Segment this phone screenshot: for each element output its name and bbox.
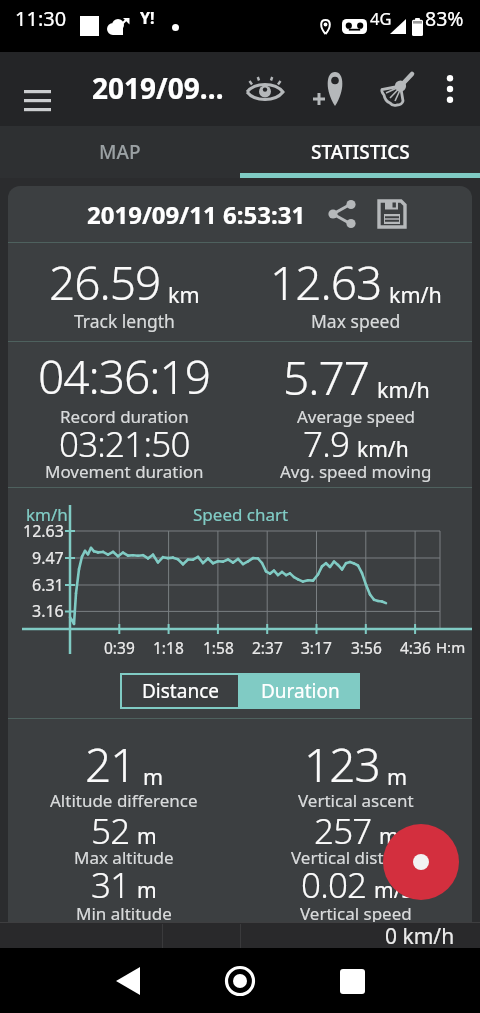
staticText: 12.63	[23, 520, 64, 542]
staticText: Vertical distance	[291, 846, 422, 869]
staticText: 0:39	[104, 637, 135, 658]
button[interactable]	[240, 64, 290, 114]
button[interactable]: MAP	[0, 126, 240, 178]
button[interactable]: STATISTICS	[240, 126, 480, 178]
button[interactable]	[370, 192, 414, 236]
staticText: m	[143, 762, 164, 791]
staticText: km	[168, 280, 200, 309]
staticText: Avg. speed moving	[280, 460, 432, 483]
staticText: 123	[304, 733, 380, 796]
staticText: Min altitude	[76, 902, 172, 922]
staticText: STATISTICS	[311, 139, 410, 165]
staticText: H:m	[436, 637, 466, 657]
staticText: 7.9	[303, 420, 350, 468]
staticText: m	[387, 762, 408, 791]
staticText: km/h	[357, 435, 409, 464]
staticText: 0 km/h	[385, 922, 455, 948]
staticText: 1:58	[203, 637, 234, 658]
staticText: 21	[85, 733, 136, 796]
staticText: Movement duration	[45, 460, 204, 483]
staticText: MAP	[99, 139, 141, 165]
staticText: Vertical speed	[300, 902, 412, 922]
staticText: Track length	[74, 309, 175, 333]
staticText: km/h	[389, 280, 442, 309]
button[interactable]	[98, 953, 158, 1009]
staticText: 6.31	[32, 574, 64, 596]
staticText: 2019/09…	[92, 69, 224, 107]
staticText: Altitude difference	[50, 789, 198, 812]
staticText: Max altitude	[74, 846, 174, 869]
staticText: 4G	[370, 7, 392, 29]
button[interactable]	[428, 64, 472, 114]
button[interactable]	[210, 953, 270, 1009]
staticText: Y!	[140, 7, 155, 29]
button[interactable]	[370, 64, 424, 114]
staticText: 83%	[425, 5, 464, 32]
staticText: m	[137, 822, 157, 851]
staticText: 03:21:50	[59, 420, 190, 468]
staticText: 0.02	[301, 861, 367, 909]
button[interactable]: Duration	[240, 673, 360, 709]
staticText: 5.77	[283, 346, 370, 409]
staticText: 3:56	[351, 637, 382, 658]
staticText: Duration	[261, 678, 340, 704]
staticText: 11:30	[15, 5, 67, 32]
staticText: 3:17	[301, 637, 332, 658]
button[interactable]	[305, 64, 355, 114]
button[interactable]	[383, 824, 459, 900]
button[interactable]	[320, 192, 364, 236]
staticText: 257	[314, 807, 372, 855]
staticText: 1:18	[153, 637, 184, 658]
staticText: Speed chart	[193, 503, 289, 526]
staticText: 26.59	[49, 251, 161, 314]
staticText: 9.47	[32, 547, 64, 569]
staticText: 3.16	[32, 600, 64, 622]
staticText: km/h	[26, 503, 68, 526]
staticText: m	[137, 876, 157, 905]
button[interactable]	[322, 953, 382, 1009]
staticText: Distance	[142, 678, 219, 704]
staticText: 04:36:19	[38, 345, 211, 408]
staticText: Vertical ascent	[298, 789, 414, 812]
staticText: 2019/09/11 6:53:31	[87, 198, 306, 231]
staticText: 12.63	[270, 251, 382, 314]
staticText: m/s	[374, 876, 412, 905]
staticText: 52	[91, 807, 130, 855]
staticText: m	[379, 822, 399, 851]
staticText: 4:36	[400, 637, 431, 658]
staticText: Max speed	[311, 309, 401, 333]
staticText: Record duration	[60, 405, 189, 428]
staticText: km/h	[377, 375, 430, 404]
staticText: Average speed	[297, 405, 415, 428]
staticText: 31	[91, 861, 130, 909]
button[interactable]: Distance	[122, 675, 238, 707]
button[interactable]	[12, 77, 62, 123]
staticText: 2:37	[252, 637, 283, 658]
